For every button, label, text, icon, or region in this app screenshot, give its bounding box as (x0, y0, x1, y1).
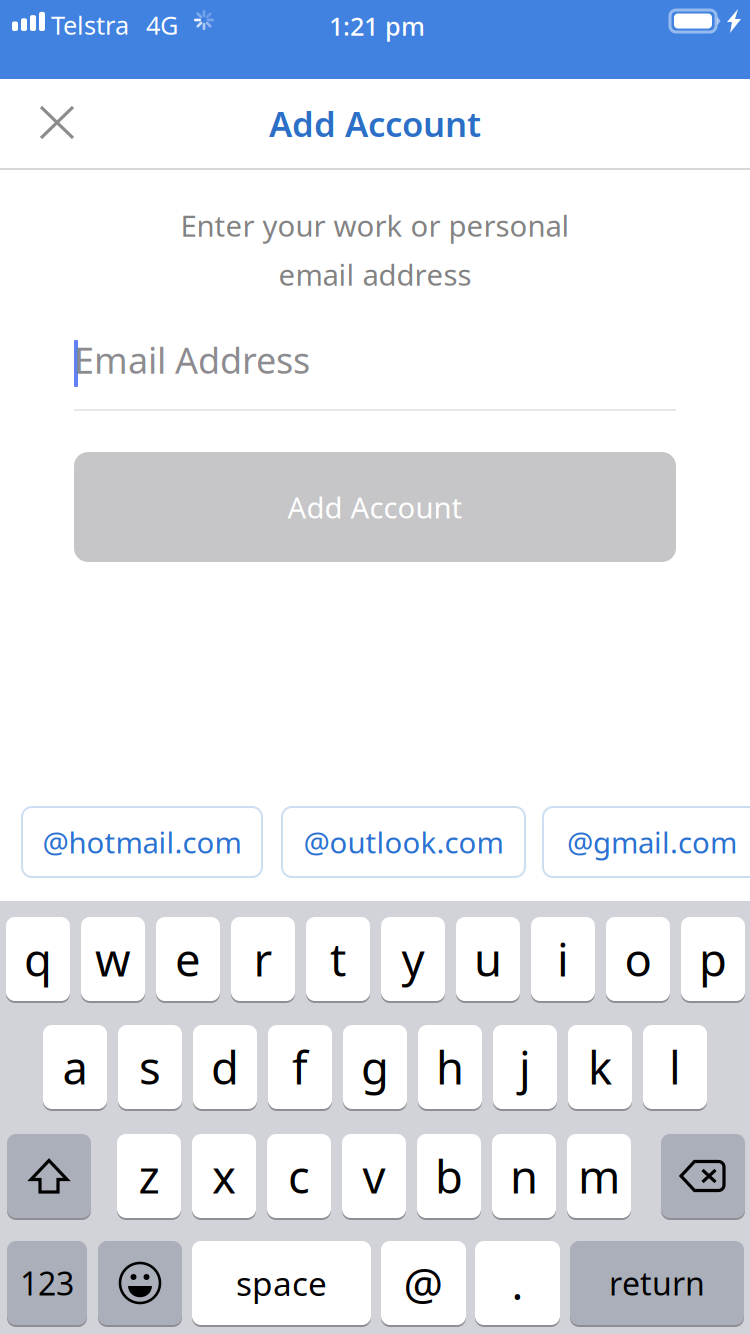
staticText: n (510, 1146, 538, 1206)
staticText: email address (278, 255, 471, 294)
button[interactable]: 123 (7, 1241, 87, 1325)
button[interactable]: return (570, 1241, 744, 1325)
staticText: h (436, 1037, 464, 1097)
staticText: @gmail.com (567, 822, 737, 861)
button[interactable]: x (192, 1134, 256, 1218)
button[interactable]: Shift (7, 1134, 91, 1218)
staticText: w (95, 929, 131, 989)
button[interactable]: r (231, 917, 295, 1001)
staticText: y (401, 929, 424, 989)
button[interactable]: k (568, 1025, 632, 1109)
button[interactable]: b (417, 1134, 481, 1218)
staticText: l (669, 1037, 681, 1097)
staticText: b (435, 1146, 463, 1206)
button[interactable]: y (381, 917, 445, 1001)
staticText: a (62, 1037, 87, 1097)
button[interactable]: h (418, 1025, 482, 1109)
button[interactable]: a (43, 1025, 107, 1109)
staticText: m (578, 1146, 620, 1206)
button[interactable]: f (268, 1025, 332, 1109)
staticText: g (361, 1037, 389, 1097)
staticText: r (253, 929, 272, 989)
button[interactable]: @ (381, 1241, 466, 1325)
button[interactable]: space (192, 1241, 371, 1325)
button[interactable]: Close (0, 79, 114, 166)
button[interactable]: z (117, 1134, 181, 1218)
button[interactable]: Emoji (98, 1241, 182, 1325)
staticText: u (474, 929, 502, 989)
staticText: 1:21 pm (329, 9, 425, 43)
button[interactable]: @gmail.com (543, 807, 750, 877)
staticText: Telstra (51, 8, 129, 42)
button[interactable]: @hotmail.com (22, 807, 262, 877)
button[interactable]: . (475, 1241, 560, 1325)
button[interactable]: @outlook.com (282, 807, 525, 877)
button[interactable]: i (531, 917, 595, 1001)
staticText: x (212, 1146, 236, 1206)
staticText: space (236, 1261, 327, 1305)
button[interactable]: j (493, 1025, 557, 1109)
staticText: @ (403, 1254, 443, 1312)
button[interactable]: n (492, 1134, 556, 1218)
staticText: f (292, 1037, 308, 1097)
staticText: 4G (146, 8, 178, 42)
button[interactable]: t (306, 917, 370, 1001)
button[interactable]: g (343, 1025, 407, 1109)
button[interactable]: d (193, 1025, 257, 1109)
staticText: v (362, 1146, 385, 1206)
button[interactable]: w (81, 917, 145, 1001)
staticText: . (511, 1254, 523, 1312)
staticText: k (588, 1037, 612, 1097)
button[interactable]: p (681, 917, 745, 1001)
staticText: Add Account (287, 487, 462, 526)
staticText: p (699, 929, 727, 989)
staticText: Email Address (74, 336, 310, 384)
staticText: s (139, 1037, 161, 1097)
button[interactable]: l (643, 1025, 707, 1109)
staticText: c (288, 1146, 310, 1206)
button[interactable]: q (6, 917, 70, 1001)
button[interactable]: e (156, 917, 220, 1001)
button[interactable]: m (567, 1134, 631, 1218)
button[interactable]: s (118, 1025, 182, 1109)
staticText: q (24, 929, 52, 989)
staticText: o (624, 929, 651, 989)
staticText: Enter your work or personal (180, 206, 569, 245)
button[interactable]: u (456, 917, 520, 1001)
staticText: 123 (20, 1262, 74, 1304)
button[interactable]: v (342, 1134, 406, 1218)
staticText: j (519, 1037, 531, 1097)
button[interactable]: Add Account (74, 452, 676, 562)
staticText: @outlook.com (303, 822, 503, 861)
staticText: d (211, 1037, 239, 1097)
staticText: t (330, 929, 346, 989)
staticText: @hotmail.com (42, 822, 241, 861)
staticText: z (138, 1146, 159, 1206)
button[interactable]: o (606, 917, 670, 1001)
staticText: return (609, 1262, 705, 1304)
button[interactable]: c (267, 1134, 331, 1218)
button[interactable]: Delete (661, 1134, 745, 1218)
staticText: e (175, 929, 201, 989)
staticText: i (557, 929, 569, 989)
staticText: Add Account (269, 100, 481, 146)
